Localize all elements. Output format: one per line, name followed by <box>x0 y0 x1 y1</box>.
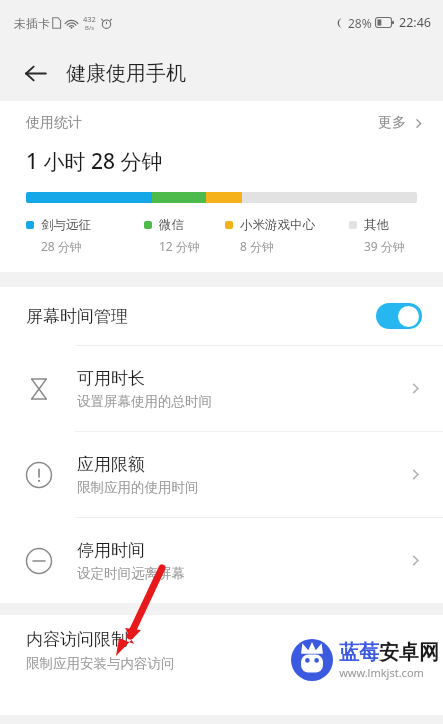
staticText: www.lmkjst.com <box>339 665 424 680</box>
staticText: 微信 <box>159 217 184 233</box>
staticText: 未插卡 <box>14 16 50 31</box>
button[interactable]: 返回 <box>14 52 56 94</box>
button[interactable]: 应用限额 <box>0 432 443 517</box>
staticText: 12 分钟 <box>159 238 200 254</box>
staticText: 设定时间远离屏幕 <box>77 565 185 582</box>
staticText: 健康使用手机 <box>66 61 186 86</box>
staticText: 更多 <box>378 114 406 132</box>
staticText: 8 分钟 <box>240 238 274 254</box>
button[interactable]: 屏幕时间管理 <box>0 287 443 345</box>
staticText: 小米游戏中心 <box>240 217 315 233</box>
button[interactable]: 停用时间 <box>0 518 443 603</box>
staticText: 使用统计 <box>26 114 82 132</box>
staticText: 停用时间 <box>77 540 145 561</box>
button[interactable]: 内容访问限制 <box>0 615 443 687</box>
staticText: 剑与远征 <box>41 217 91 233</box>
staticText: 安卓网 <box>379 640 439 665</box>
staticText: 应用限额 <box>77 454 145 475</box>
staticText: 蓝莓 <box>339 640 379 665</box>
staticText: 39 分钟 <box>364 238 405 254</box>
staticText: 432 <box>83 14 96 24</box>
staticText: 22:46 <box>399 14 431 31</box>
staticText: 1 小时 28 分钟 <box>26 147 163 176</box>
staticText: 可用时长 <box>77 368 145 389</box>
button[interactable]: 使用统计 <box>0 101 443 145</box>
staticText: 屏幕时间管理 <box>26 306 128 327</box>
button[interactable]: 可用时长 <box>0 346 443 431</box>
staticText: 设置屏幕使用的总时间 <box>77 393 212 410</box>
staticText: 内容访问限制 <box>26 629 128 650</box>
button[interactable]: 屏幕时间管理开关 <box>376 303 422 329</box>
staticText: B/s <box>85 24 95 32</box>
staticText: 其他 <box>364 217 389 233</box>
staticText: 28% <box>348 15 372 31</box>
staticText: 28 分钟 <box>41 238 82 254</box>
staticText: 限制应用的使用时间 <box>77 479 199 496</box>
staticText: 限制应用安装与内容访问 <box>26 655 175 672</box>
